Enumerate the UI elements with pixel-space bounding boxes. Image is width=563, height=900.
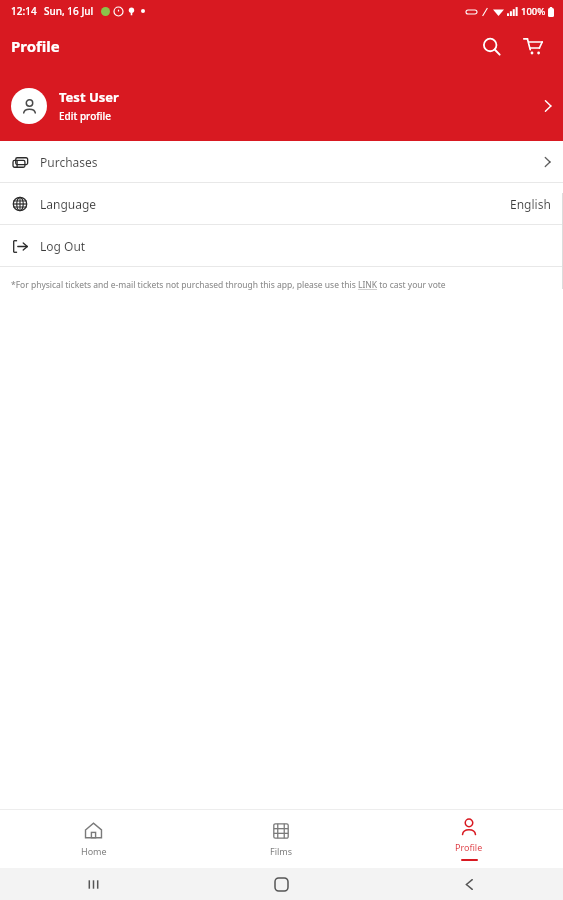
button[interactable]: Purchases	[0, 141, 563, 182]
staticText: Test User	[59, 88, 119, 106]
button[interactable]: Profile	[375, 810, 563, 868]
staticText: Profile	[455, 841, 483, 853]
staticText: Edit profile	[59, 109, 111, 123]
staticText: Sun, 16 Jul	[44, 4, 94, 18]
button[interactable]: Home	[0, 810, 187, 868]
button[interactable]: Log Out	[0, 225, 563, 266]
staticText: English	[510, 196, 551, 212]
button[interactable]: Test User	[0, 70, 563, 141]
staticText: Profile	[11, 36, 60, 56]
staticText: 12:14	[11, 4, 37, 18]
staticText: 100%	[521, 5, 546, 18]
staticText: Purchases	[40, 154, 98, 170]
button[interactable]: Search	[471, 26, 511, 66]
staticText: Films	[270, 845, 293, 857]
button[interactable]: Cart	[513, 26, 553, 66]
staticText: Language	[40, 196, 97, 212]
staticText: Home	[81, 845, 107, 857]
staticText: *For physical tickets and e-mail tickets…	[11, 279, 446, 291]
button[interactable]: Language	[0, 183, 563, 224]
staticText: Log Out	[40, 238, 86, 254]
button[interactable]: Films	[187, 810, 375, 868]
